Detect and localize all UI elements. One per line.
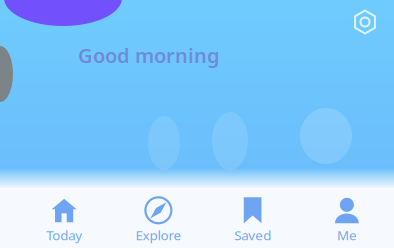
button[interactable]: Me (300, 186, 394, 248)
button[interactable]: Explore (111, 186, 205, 248)
staticText: Good morning (78, 42, 220, 69)
staticText: Today (46, 226, 82, 244)
button[interactable]: Settings (348, 5, 382, 39)
button[interactable]: Saved (205, 186, 300, 248)
staticText: Explore (135, 226, 181, 244)
button[interactable]: Today (17, 186, 111, 248)
staticText: Saved (234, 226, 271, 244)
staticText: Me (337, 226, 357, 244)
